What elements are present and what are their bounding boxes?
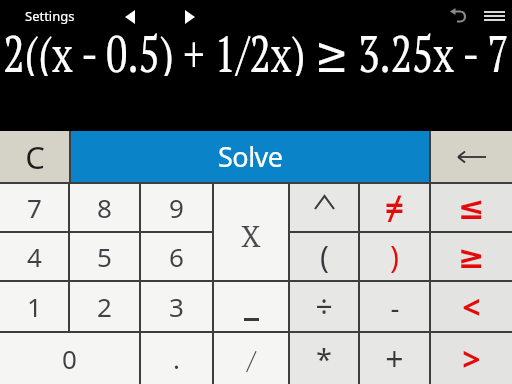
staticText: 3 [169, 289, 184, 324]
staticText: . [173, 341, 180, 376]
button[interactable] [444, 2, 472, 30]
button[interactable]: 7 [0, 184, 68, 231]
button[interactable]: Settings [14, 0, 94, 32]
button[interactable] [290, 184, 358, 231]
staticText: ≥ [458, 238, 485, 275]
staticText: ) [390, 236, 399, 277]
staticText: - [390, 288, 400, 326]
button[interactable]: 3 [141, 282, 212, 331]
button[interactable] [116, 4, 144, 30]
button[interactable]: X [214, 184, 288, 280]
button[interactable] [176, 4, 204, 30]
button[interactable]: > [431, 333, 512, 384]
button[interactable]: 8 [70, 184, 139, 231]
staticText: 9 [169, 190, 184, 225]
staticText: < [462, 285, 481, 329]
button[interactable]: ÷ [290, 282, 358, 331]
button[interactable]: C [0, 131, 69, 182]
staticText: 4 [27, 239, 42, 274]
staticText: ( [320, 236, 329, 277]
staticText: 5 [97, 239, 112, 274]
staticText: C [25, 136, 45, 178]
staticText: ≠ [385, 185, 404, 230]
button[interactable]: ( [290, 233, 358, 280]
button[interactable]: - [360, 282, 429, 331]
staticText: 1 [27, 289, 42, 324]
button[interactable]: 4 [0, 233, 68, 280]
staticText: * [316, 339, 332, 378]
button[interactable]: 1 [0, 282, 68, 331]
staticText: ÷ [315, 286, 333, 327]
staticText: 8 [97, 190, 112, 225]
button[interactable] [431, 131, 512, 182]
button[interactable]: . [141, 333, 212, 384]
staticText: / [247, 342, 256, 376]
button[interactable]: ≤ [431, 184, 512, 231]
staticText: > [462, 337, 481, 381]
button[interactable]: 0 [0, 333, 139, 384]
button[interactable]: 2 [70, 282, 139, 331]
button[interactable]: / [214, 333, 288, 384]
button[interactable]: 9 [141, 184, 212, 231]
button[interactable]: ≠ [360, 184, 429, 231]
staticText: X [241, 217, 261, 255]
button[interactable]: < [431, 282, 512, 331]
button[interactable]: 6 [141, 233, 212, 280]
staticText: 2 [97, 289, 112, 324]
staticText: 7 [27, 190, 42, 225]
staticText: 6 [169, 239, 184, 274]
button[interactable] [214, 282, 288, 331]
button[interactable] [478, 2, 510, 30]
staticText: ≤ [458, 189, 485, 226]
button[interactable]: + [360, 333, 429, 384]
button[interactable]: Solve [71, 131, 429, 182]
button[interactable]: * [290, 333, 358, 384]
staticText: 0 [62, 341, 77, 376]
staticText: + [385, 337, 404, 381]
button[interactable]: 5 [70, 233, 139, 280]
staticText: Settings [25, 7, 75, 25]
staticText: 2((x - 0.5) + 1/2x) ≥ 3.25x - 7 [0, 20, 512, 76]
button[interactable]: ≥ [431, 233, 512, 280]
button[interactable]: ) [360, 233, 429, 280]
staticText: Solve [218, 138, 283, 175]
